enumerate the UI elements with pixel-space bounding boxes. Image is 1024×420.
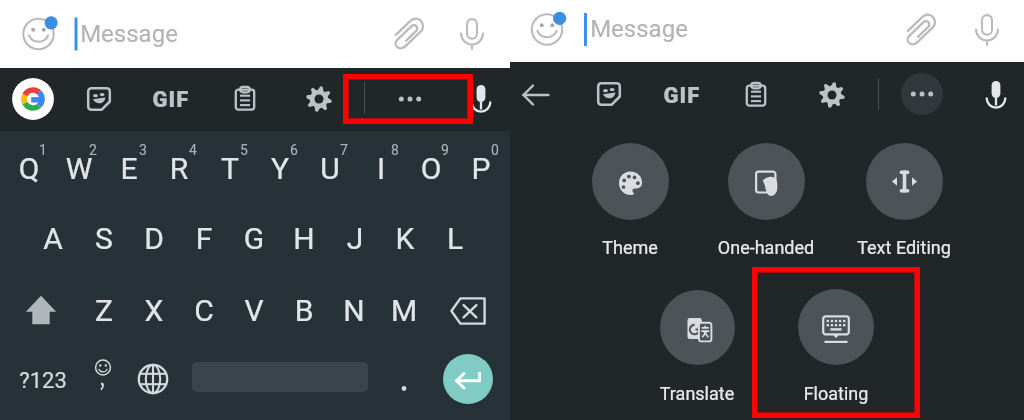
staticText: 5 xyxy=(233,142,255,165)
button[interactable]: L xyxy=(430,204,480,275)
staticText: W xyxy=(54,151,104,199)
staticText: ?123 xyxy=(12,368,74,404)
staticText: G xyxy=(229,221,279,269)
button[interactable]: C xyxy=(179,275,229,346)
button[interactable]: GIF xyxy=(141,80,201,116)
button[interactable]: F xyxy=(179,204,229,275)
staticText: GIF xyxy=(141,87,201,123)
button[interactable]: N xyxy=(329,275,379,346)
staticText: U xyxy=(305,151,355,199)
button[interactable]: Voice typing xyxy=(459,76,503,120)
staticText: M xyxy=(379,293,429,341)
staticText: D xyxy=(129,221,179,269)
staticText: E xyxy=(104,151,154,199)
staticText: I xyxy=(356,151,406,199)
button[interactable]: R xyxy=(154,133,204,204)
button[interactable]: More options xyxy=(386,75,434,123)
staticText: N xyxy=(329,293,379,341)
staticText: 2 xyxy=(82,142,104,165)
button[interactable]: Voice message xyxy=(965,8,1009,52)
button[interactable]: Back xyxy=(514,73,558,117)
button[interactable]: Theme xyxy=(546,121,714,272)
staticText: 1 xyxy=(32,142,54,165)
button[interactable]: H xyxy=(279,204,329,275)
button[interactable]: X xyxy=(129,275,179,346)
staticText: 8 xyxy=(384,142,406,165)
button[interactable]: Settings xyxy=(297,77,341,121)
staticText: 4 xyxy=(182,142,204,165)
button[interactable]: M xyxy=(379,275,429,346)
staticText: Message xyxy=(584,15,694,53)
staticText: B xyxy=(279,293,329,341)
button[interactable]: Enter xyxy=(443,354,493,404)
button[interactable]: Backspace xyxy=(441,284,495,338)
button[interactable]: Google search xyxy=(9,75,57,123)
button[interactable]: V xyxy=(229,275,279,346)
button[interactable]: One-handed xyxy=(682,121,850,272)
staticText: J xyxy=(330,221,380,269)
button[interactable]: Stickers xyxy=(77,77,121,121)
staticText: A xyxy=(28,221,78,269)
staticText: Translate xyxy=(622,383,772,412)
button[interactable]: J xyxy=(330,204,380,275)
button[interactable]: K xyxy=(380,204,430,275)
staticText: L xyxy=(430,221,480,269)
staticText: Theme xyxy=(555,237,705,266)
button[interactable]: G xyxy=(229,204,279,275)
staticText: P xyxy=(456,151,506,199)
staticText: V xyxy=(229,293,279,341)
staticText: 3 xyxy=(132,142,154,165)
staticText: Y xyxy=(255,151,305,199)
button[interactable]: Attach file xyxy=(386,12,430,56)
button[interactable]: O xyxy=(406,133,456,204)
staticText: S xyxy=(79,221,129,269)
button[interactable]: Symbols xyxy=(12,346,74,412)
button[interactable]: Text Editing xyxy=(820,121,988,272)
staticText: Text Editing xyxy=(829,237,979,266)
staticText: Z xyxy=(79,293,129,341)
staticText: Message xyxy=(74,20,184,58)
button[interactable]: Z xyxy=(79,275,129,346)
staticText: F xyxy=(179,221,229,269)
staticText: T xyxy=(205,151,255,199)
button[interactable]: Shift xyxy=(16,285,66,335)
button[interactable]: A xyxy=(28,204,78,275)
staticText: R xyxy=(154,151,204,199)
button[interactable]: Attach file xyxy=(898,8,942,52)
staticText: GIF xyxy=(652,83,712,119)
button[interactable]: Clipboard xyxy=(734,72,778,116)
button[interactable]: Change language xyxy=(130,356,176,402)
button[interactable]: E xyxy=(104,133,154,204)
staticText: One-handed xyxy=(691,237,841,266)
button[interactable]: D xyxy=(129,204,179,275)
button[interactable]: S xyxy=(79,204,129,275)
staticText: C xyxy=(179,293,229,341)
staticText: 9 xyxy=(434,142,456,165)
staticText: 6 xyxy=(283,142,305,165)
button[interactable]: Emoji xyxy=(80,355,126,401)
button[interactable]: W xyxy=(54,133,104,204)
staticText: Q xyxy=(4,151,54,199)
button[interactable]: Clipboard xyxy=(223,76,267,120)
button[interactable]: Voice typing xyxy=(974,72,1018,116)
button[interactable]: Floating xyxy=(752,267,920,418)
staticText: Floating xyxy=(761,383,911,412)
button[interactable]: Translate xyxy=(613,267,781,418)
button[interactable]: I xyxy=(356,133,406,204)
button[interactable]: Y xyxy=(255,133,305,204)
button[interactable]: Q xyxy=(4,133,54,204)
button[interactable]: More options xyxy=(901,73,943,115)
button[interactable]: Settings xyxy=(810,73,854,117)
button[interactable]: T xyxy=(205,133,255,204)
button[interactable]: GIF xyxy=(652,76,712,112)
button[interactable]: P xyxy=(456,133,506,204)
staticText: K xyxy=(380,221,430,269)
staticText: H xyxy=(279,221,329,269)
button[interactable]: Voice message xyxy=(450,12,494,56)
staticText: 7 xyxy=(333,142,355,165)
button[interactable]: Period xyxy=(386,359,422,399)
button[interactable]: Stickers xyxy=(587,72,631,116)
button[interactable]: U xyxy=(305,133,355,204)
button[interactable]: B xyxy=(279,275,329,346)
